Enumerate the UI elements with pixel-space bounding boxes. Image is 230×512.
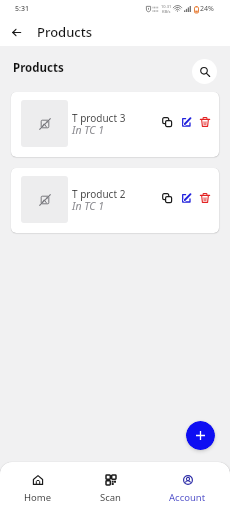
staticText: Products <box>37 23 93 41</box>
staticText: 24% <box>200 4 214 14</box>
staticText: 5:31 <box>15 4 29 14</box>
staticText: In TC 1 <box>72 123 104 137</box>
staticText: T product 3 <box>72 111 126 125</box>
button[interactable]: Scan <box>100 462 121 512</box>
button[interactable]: T product 3 <box>11 92 219 157</box>
button[interactable]: Search <box>192 59 217 84</box>
button[interactable]: Duplicate <box>160 115 174 129</box>
staticText: Home <box>24 491 52 504</box>
button[interactable]: T product 2 <box>11 168 219 233</box>
staticText: KB/s <box>162 9 171 14</box>
staticText: 10.31 <box>161 4 172 9</box>
button[interactable]: Account <box>169 462 206 512</box>
staticText: Products <box>13 60 64 76</box>
button[interactable]: Edit <box>179 115 193 129</box>
staticText: In TC 1 <box>72 199 104 213</box>
button[interactable]: Delete <box>198 115 212 129</box>
button[interactable]: Add <box>186 421 215 450</box>
button[interactable]: Duplicate <box>160 191 174 205</box>
button[interactable]: Edit <box>179 191 193 205</box>
staticText: Scan <box>100 491 121 504</box>
staticText: T product 2 <box>72 187 126 201</box>
button[interactable]: Back <box>4 20 28 44</box>
button[interactable]: Home <box>24 462 52 512</box>
button[interactable]: Delete <box>198 191 212 205</box>
staticText: Account <box>169 491 206 504</box>
